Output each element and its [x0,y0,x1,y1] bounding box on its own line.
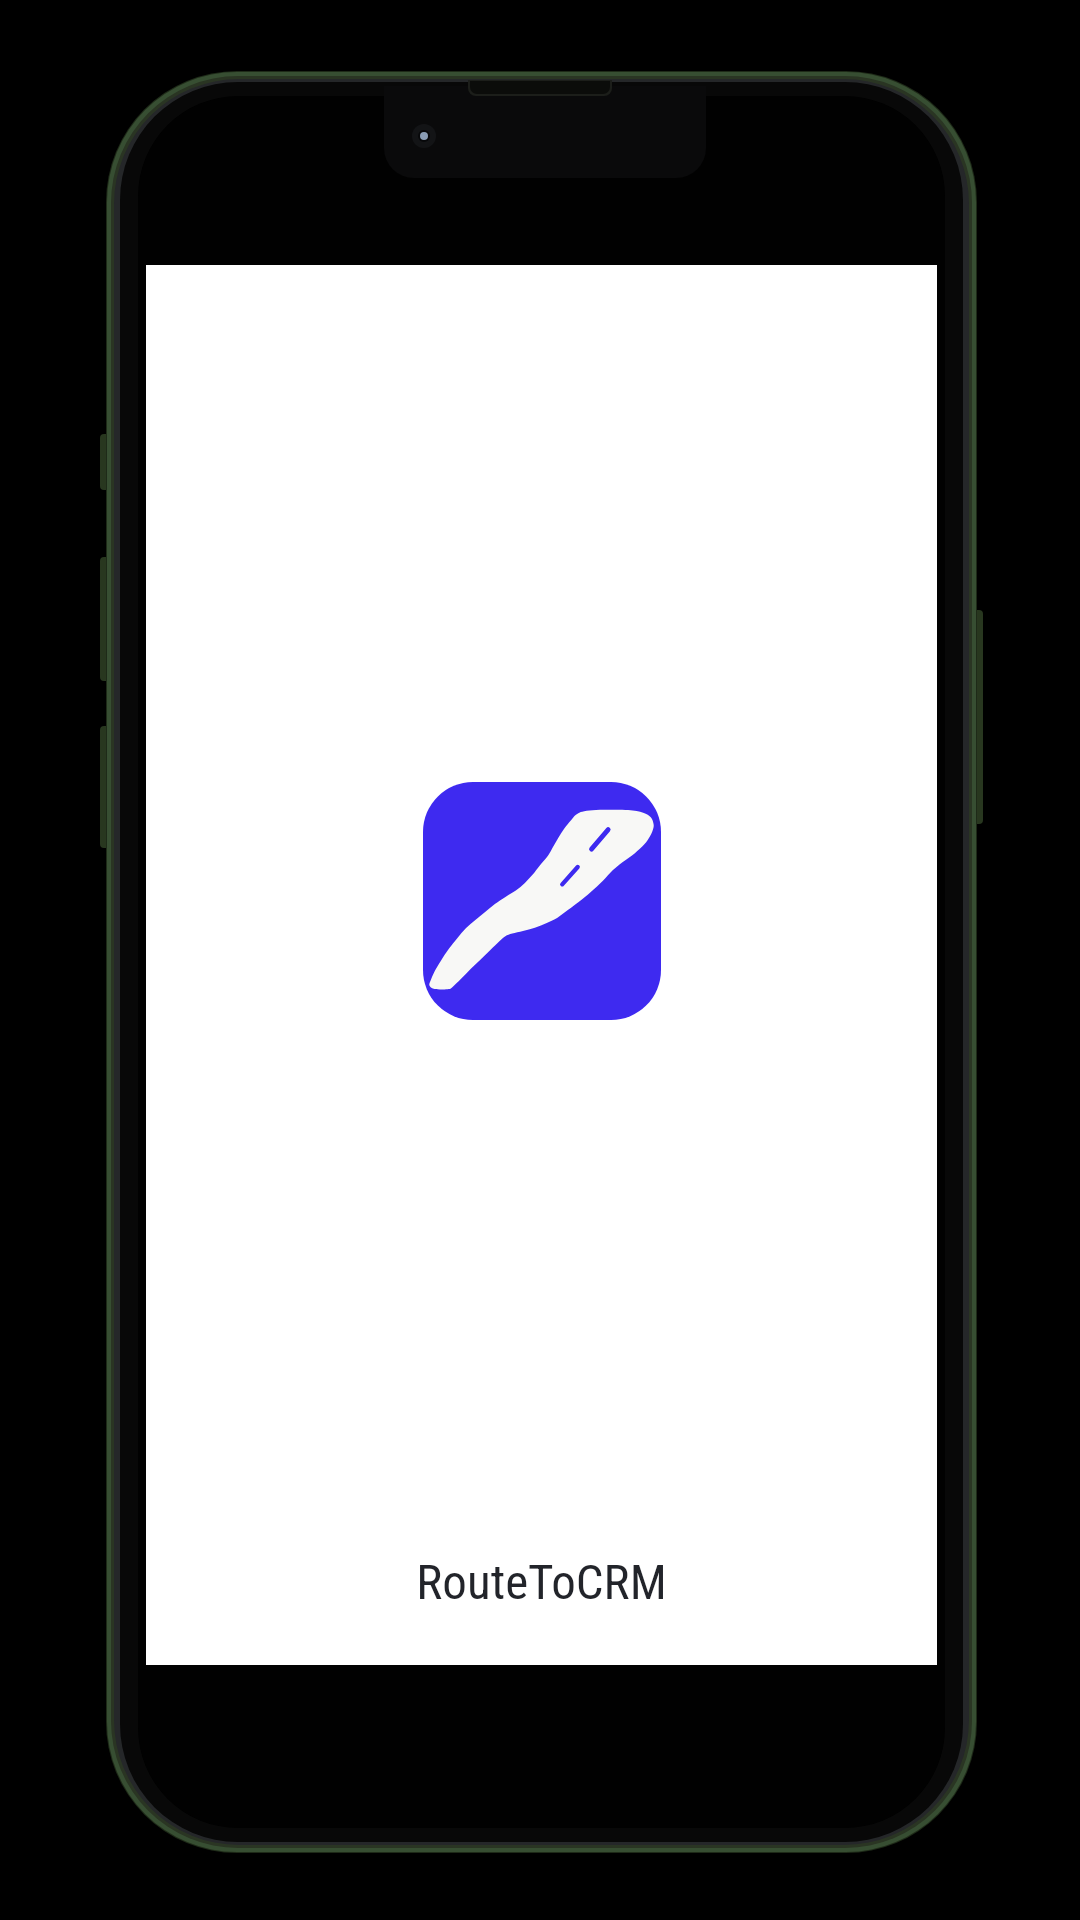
button[interactable]: Power [972,610,983,824]
button[interactable]: RouteToCRM app icon [423,782,661,1020]
button[interactable]: Assistant [100,726,111,848]
button[interactable]: Volume up [100,434,111,490]
staticText: RouteToCRM [416,1554,667,1611]
button[interactable]: Volume down [100,557,111,681]
button[interactable]: RouteToCRM app icon [146,265,937,1665]
